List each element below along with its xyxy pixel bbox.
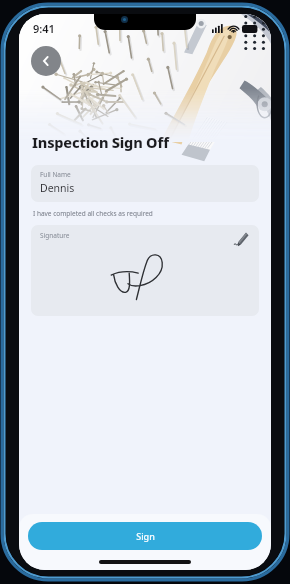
staticText: Dennis (40, 181, 75, 195)
staticText: Signature (40, 231, 70, 240)
button[interactable]: Signature pad (31, 225, 259, 316)
staticText: I have completed all checks as required (33, 209, 153, 218)
staticText: Inspection Sign Off (32, 132, 169, 152)
staticText: Full Name (40, 170, 71, 179)
staticText: Sign (136, 530, 155, 542)
button[interactable]: Sign (28, 522, 262, 550)
button[interactable]: Back (31, 46, 61, 76)
button[interactable]: Full Name (31, 165, 259, 202)
staticText: 9:41 (33, 21, 55, 36)
